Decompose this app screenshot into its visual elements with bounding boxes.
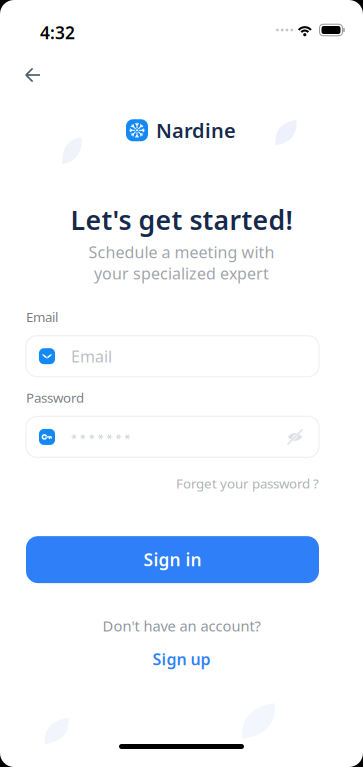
staticText: your specialized expert — [94, 263, 269, 284]
staticText: Schedule a meeting with — [88, 241, 274, 263]
staticText: 4:32 — [40, 21, 75, 44]
staticText: Forget your password ? — [176, 474, 319, 492]
staticText: Password — [26, 389, 84, 406]
button[interactable]: Forget your password ? — [176, 474, 319, 492]
staticText: Don't have an account? — [102, 616, 260, 635]
button[interactable]: Sign up — [152, 648, 210, 670]
button[interactable]: Sign in — [26, 536, 319, 583]
staticText: Let's get started! — [70, 202, 292, 237]
staticText: Sign in — [143, 548, 201, 571]
staticText: Nardine — [156, 117, 236, 144]
staticText: Sign up — [152, 648, 210, 670]
button[interactable]: Show password — [284, 426, 306, 448]
staticText: Email — [71, 346, 112, 367]
staticText: Email — [26, 308, 58, 326]
button[interactable]: Back — [11, 53, 55, 97]
